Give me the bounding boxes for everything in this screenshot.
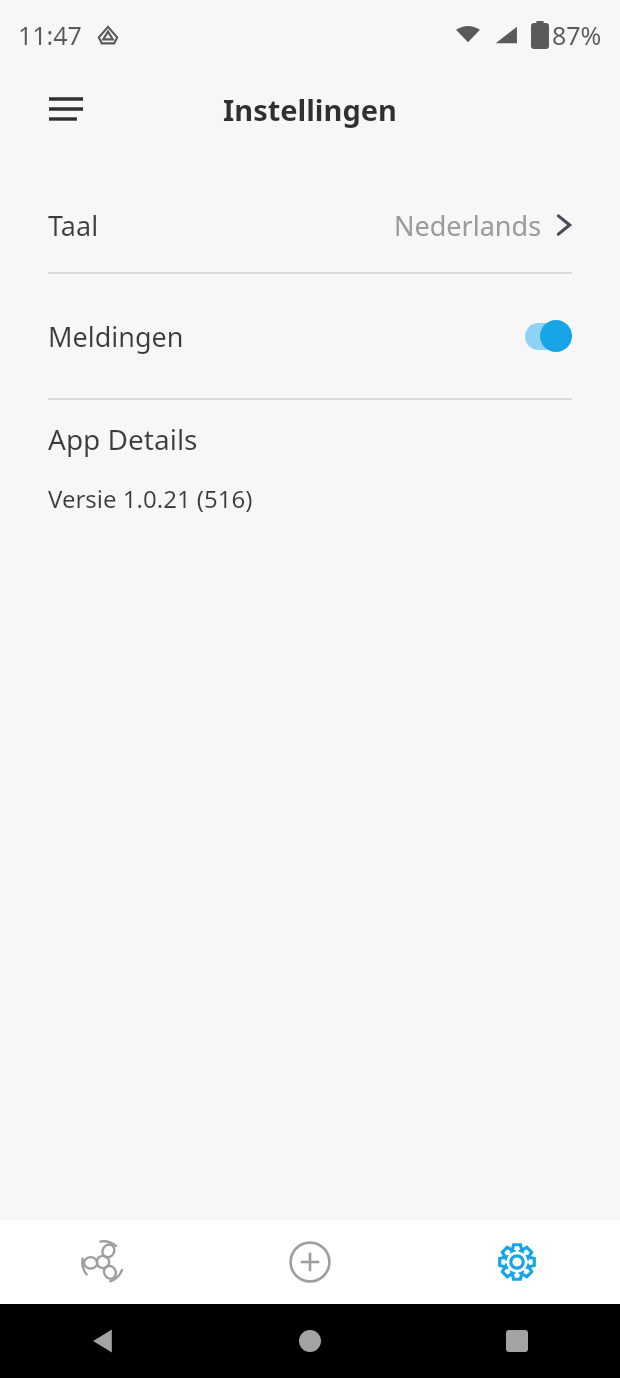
button[interactable]: Settings xyxy=(413,1220,620,1304)
staticText: App Details xyxy=(48,420,198,458)
button[interactable]: Devices xyxy=(0,1220,206,1304)
button[interactable]: Home xyxy=(206,1304,413,1378)
staticText: 87% xyxy=(552,18,602,52)
button[interactable]: Back xyxy=(0,1304,206,1378)
button[interactable]: Taal xyxy=(0,178,620,272)
staticText: Meldingen xyxy=(48,318,184,355)
staticText: Taal xyxy=(48,207,99,244)
button[interactable]: Menu xyxy=(40,83,92,135)
staticText: Versie 1.0.21 (516) xyxy=(48,482,253,515)
staticText: Instellingen xyxy=(223,90,397,129)
button[interactable]: Add xyxy=(206,1220,413,1304)
button[interactable]: Recents xyxy=(413,1304,620,1378)
button[interactable]: Meldingen xyxy=(0,274,620,398)
staticText: Nederlands xyxy=(394,207,542,244)
staticText: 11:47 xyxy=(18,18,82,52)
